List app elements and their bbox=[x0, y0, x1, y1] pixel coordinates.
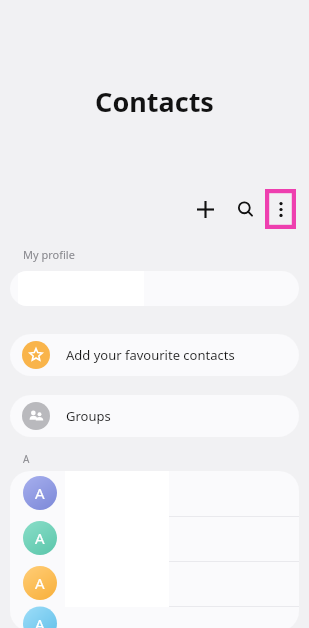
button[interactable]: A bbox=[10, 561, 299, 606]
button[interactable]: A bbox=[10, 606, 299, 628]
button[interactable]: A bbox=[10, 471, 299, 516]
staticText: Contacts bbox=[0, 83, 309, 120]
staticText: A bbox=[35, 483, 45, 503]
button[interactable] bbox=[10, 271, 299, 306]
button[interactable]: Add contact bbox=[185, 189, 225, 229]
button[interactable]: Groups bbox=[10, 395, 299, 437]
staticText: A bbox=[35, 614, 45, 628]
staticText: A bbox=[23, 452, 30, 466]
staticText: A bbox=[35, 573, 45, 593]
button[interactable]: Search bbox=[225, 189, 265, 229]
button[interactable]: More options bbox=[265, 189, 296, 229]
staticText: My profile bbox=[23, 247, 75, 262]
staticText: Add your favourite contacts bbox=[66, 346, 235, 364]
button[interactable]: A bbox=[10, 516, 299, 561]
staticText: Groups bbox=[66, 407, 111, 425]
button[interactable]: Add your favourite contacts bbox=[10, 334, 299, 376]
staticText: A bbox=[35, 528, 45, 548]
